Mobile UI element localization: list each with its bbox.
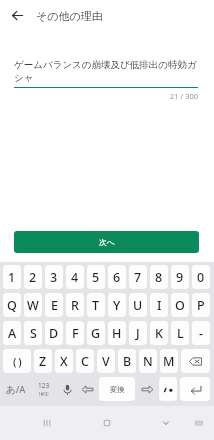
button[interactable]: 1 bbox=[3, 265, 21, 289]
button[interactable]: G bbox=[87, 321, 105, 345]
button[interactable]: 7 bbox=[129, 265, 147, 289]
staticText: H bbox=[112, 325, 122, 342]
staticText: - bbox=[199, 325, 204, 342]
button[interactable]: Symbols bbox=[32, 377, 56, 401]
staticText: O bbox=[175, 297, 185, 314]
button[interactable]: D bbox=[45, 321, 63, 345]
staticText: V bbox=[102, 353, 110, 370]
staticText: K bbox=[155, 325, 163, 342]
button[interactable]: K bbox=[150, 321, 168, 345]
staticText: T bbox=[92, 297, 100, 314]
button[interactable]: W bbox=[24, 293, 42, 317]
button[interactable]: 6 bbox=[108, 265, 126, 289]
staticText: Z bbox=[39, 353, 47, 370]
button[interactable]: N bbox=[139, 349, 157, 373]
staticText: Q bbox=[7, 297, 17, 314]
staticText: 5 bbox=[92, 269, 100, 286]
button[interactable]: Y bbox=[108, 293, 126, 317]
button[interactable]: 次へ bbox=[14, 231, 199, 253]
staticText: ( ) bbox=[13, 354, 22, 369]
button[interactable]: F bbox=[66, 321, 84, 345]
staticText: 変換 bbox=[110, 385, 125, 394]
staticText: Y bbox=[113, 297, 121, 314]
staticText: G bbox=[91, 325, 101, 342]
staticText: S bbox=[30, 325, 37, 342]
button[interactable]: 8 bbox=[150, 265, 168, 289]
staticText: ゲームバランスの崩壊及び低排出の特効ガシャ bbox=[14, 59, 198, 84]
staticText: 3 bbox=[50, 269, 58, 286]
button[interactable]: 2 bbox=[24, 265, 42, 289]
button[interactable]: O bbox=[171, 293, 189, 317]
staticText: 0 bbox=[197, 269, 205, 286]
staticText: B bbox=[123, 353, 132, 370]
staticText: 4 bbox=[71, 269, 79, 286]
button[interactable]: S bbox=[24, 321, 42, 345]
staticText: D bbox=[49, 325, 59, 342]
staticText: 6 bbox=[113, 269, 121, 286]
button[interactable]: L bbox=[171, 321, 189, 345]
staticText: E bbox=[51, 297, 58, 314]
button[interactable]: X bbox=[55, 349, 73, 373]
button[interactable]: 9 bbox=[171, 265, 189, 289]
staticText: 1 bbox=[8, 269, 16, 286]
staticText: 9 bbox=[176, 269, 184, 286]
button[interactable]: ( ) bbox=[3, 349, 31, 373]
button[interactable]: Punctuation bbox=[159, 377, 177, 401]
button[interactable]: C bbox=[76, 349, 94, 373]
button[interactable]: U bbox=[129, 293, 147, 317]
staticText: あ/A bbox=[6, 383, 26, 396]
button[interactable]: V bbox=[97, 349, 115, 373]
button[interactable]: Voice input bbox=[59, 377, 76, 401]
staticText: J bbox=[136, 325, 140, 342]
button[interactable]: B bbox=[118, 349, 136, 373]
staticText: M bbox=[163, 353, 175, 370]
button[interactable]: Switch keyboard bbox=[186, 406, 212, 440]
staticText: 8 bbox=[155, 269, 163, 286]
staticText: L bbox=[177, 325, 184, 342]
button[interactable]: Language bbox=[3, 377, 29, 401]
staticText: 7 bbox=[134, 269, 142, 286]
button[interactable]: T bbox=[87, 293, 105, 317]
button[interactable]: - bbox=[192, 321, 210, 345]
button[interactable]: 5 bbox=[87, 265, 105, 289]
button[interactable]: H bbox=[108, 321, 126, 345]
button[interactable]: P bbox=[192, 293, 210, 317]
button[interactable]: Back bbox=[4, 2, 30, 28]
button[interactable]: I bbox=[150, 293, 168, 317]
staticText: P bbox=[197, 297, 205, 314]
staticText: !#① bbox=[39, 390, 49, 397]
button[interactable]: 0 bbox=[192, 265, 210, 289]
staticText: R bbox=[71, 297, 79, 314]
button[interactable]: Enter bbox=[180, 377, 210, 401]
button[interactable]: Q bbox=[3, 293, 21, 317]
button[interactable]: M bbox=[160, 349, 178, 373]
button[interactable]: R bbox=[66, 293, 84, 317]
staticText: F bbox=[72, 325, 79, 342]
button[interactable]: 4 bbox=[66, 265, 84, 289]
button[interactable]: 変換 bbox=[99, 377, 135, 401]
button[interactable]: Next candidate bbox=[138, 377, 156, 401]
staticText: W bbox=[27, 297, 39, 314]
staticText: A bbox=[8, 325, 17, 342]
staticText: その他の理由 bbox=[36, 9, 103, 23]
staticText: U bbox=[133, 297, 143, 314]
button[interactable]: E bbox=[45, 293, 63, 317]
button[interactable]: Z bbox=[34, 349, 52, 373]
staticText: I bbox=[157, 297, 162, 314]
button[interactable]: J bbox=[129, 321, 147, 345]
staticText: N bbox=[143, 353, 153, 370]
button[interactable]: Hide keyboard bbox=[153, 406, 179, 440]
staticText: 21 / 300 bbox=[14, 91, 198, 101]
staticText: X bbox=[60, 353, 68, 370]
button[interactable]: Previous candidate bbox=[79, 377, 96, 401]
button[interactable]: 3 bbox=[45, 265, 63, 289]
button[interactable]: Recents bbox=[34, 406, 60, 440]
staticText: C bbox=[81, 353, 89, 370]
button[interactable]: A bbox=[3, 321, 21, 345]
staticText: 2 bbox=[29, 269, 37, 286]
button[interactable]: Home bbox=[94, 406, 120, 440]
staticText: 123 bbox=[38, 381, 50, 390]
staticText: 次へ bbox=[99, 237, 115, 247]
button[interactable]: Backspace bbox=[181, 349, 210, 373]
